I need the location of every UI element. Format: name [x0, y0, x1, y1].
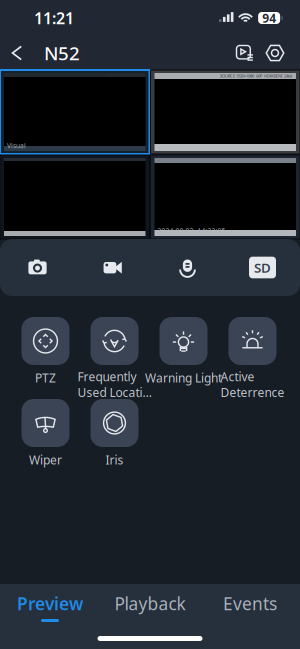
staticText: Preview: [17, 592, 83, 615]
button[interactable]: Playback: [100, 582, 200, 622]
button[interactable]: Warning Light: [149, 317, 218, 399]
staticText: Wiper: [29, 452, 62, 468]
button[interactable]: Two-way talk: [150, 239, 225, 296]
staticText: Iris: [105, 452, 123, 468]
button[interactable]: Stream quality SD: [225, 239, 300, 296]
button[interactable]: Playback list: [230, 36, 260, 70]
staticText: SD: [254, 259, 271, 276]
button[interactable]: Active Deterrence: [218, 317, 287, 399]
button[interactable]: Preview: [0, 582, 100, 622]
staticText: Playback: [114, 592, 185, 615]
staticText: 2024-08-02 14:22:05: [108, 72, 141, 78]
staticText: 11:21: [34, 7, 74, 29]
staticText: Warning Light: [145, 370, 222, 386]
staticText: N52: [44, 41, 80, 65]
staticText: Visual: [7, 141, 26, 150]
button[interactable]: Iris: [80, 399, 149, 481]
button[interactable]: Frequently Used Locati…: [80, 317, 149, 399]
button[interactable]: Events: [200, 582, 300, 622]
button[interactable]: Wiper: [11, 399, 80, 481]
button[interactable]: Back: [3, 36, 31, 70]
button[interactable]: Settings: [260, 36, 290, 70]
staticText: SOURCE 1920×1080 60P HDMI/DVI 24bit: [220, 73, 292, 79]
staticText: 2024-08-02 14:22:05: [157, 226, 225, 235]
staticText: Events: [223, 592, 277, 615]
staticText: PTZ: [35, 370, 56, 386]
staticText: 94: [262, 10, 276, 26]
button[interactable]: PTZ: [11, 317, 80, 399]
staticText: Active Deterrence: [220, 369, 284, 400]
staticText: Frequently Used Locati…: [77, 369, 151, 400]
button[interactable]: Record: [75, 239, 150, 296]
button[interactable]: Snapshot: [0, 239, 75, 296]
